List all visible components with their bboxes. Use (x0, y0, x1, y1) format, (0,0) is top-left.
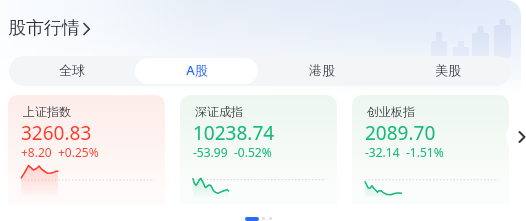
staticText: -53.99 (193, 144, 228, 160)
button[interactable]: 深证成指 (180, 95, 337, 204)
staticText: +8.20 (21, 144, 52, 160)
button[interactable]: 上证指数 (8, 95, 165, 204)
staticText: 3260.83 (21, 120, 92, 146)
button[interactable]: A股 (135, 58, 258, 84)
staticText: -0.52% (234, 144, 272, 160)
button[interactable]: 股市行情 (8, 17, 91, 40)
staticText: 创业板指 (367, 104, 415, 119)
staticText: +0.25% (58, 144, 99, 160)
staticText: 股市行情 (8, 17, 80, 40)
button[interactable]: 全球 (10, 58, 133, 84)
staticText: A股 (186, 61, 208, 79)
button[interactable]: 创业板指 (352, 95, 509, 204)
staticText: -1.51% (406, 144, 444, 160)
button[interactable]: Next page (506, 119, 526, 155)
button[interactable]: 港股 (260, 58, 384, 84)
staticText: 全球 (59, 62, 85, 78)
staticText: 深证成指 (195, 104, 243, 119)
staticText: -32.14 (365, 144, 400, 160)
staticText: 10238.74 (193, 120, 275, 146)
staticText: 上证指数 (23, 104, 71, 119)
button[interactable]: 美股 (386, 58, 510, 84)
staticText: 港股 (309, 62, 335, 78)
staticText: 2089.70 (365, 120, 436, 146)
staticText: 美股 (435, 62, 461, 78)
